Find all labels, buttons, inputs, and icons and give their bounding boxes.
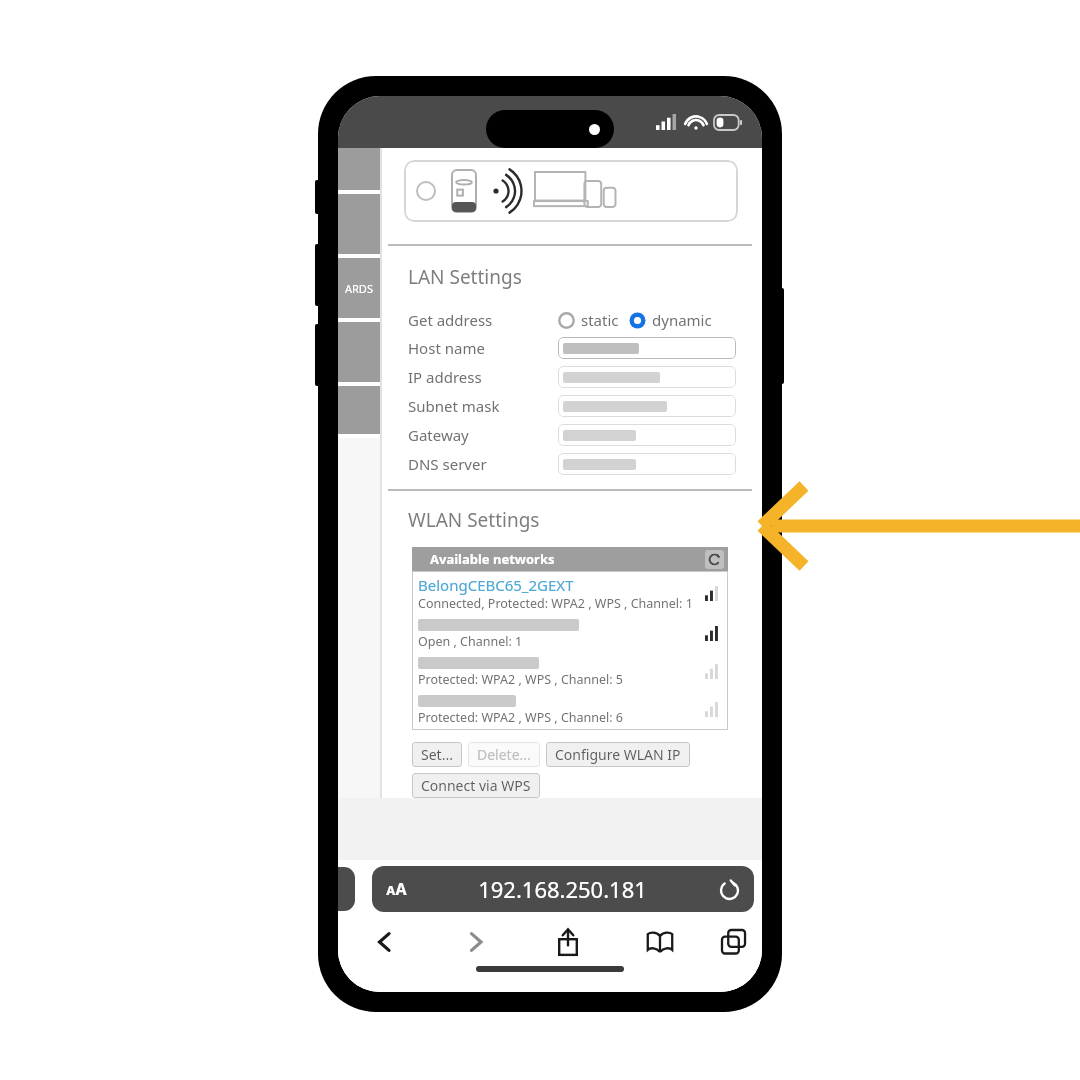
staticText: Subnet mask	[408, 396, 536, 416]
staticText: dynamic	[652, 310, 712, 330]
staticText: Open , Channel: 1	[418, 633, 523, 650]
button[interactable]: Connect via WPS	[412, 773, 540, 798]
staticText: Protected: WPA2 , WPS , Channel: 6	[418, 709, 624, 726]
staticText: Connect via WPS	[421, 776, 531, 795]
staticText: Configure WLAN IP	[555, 745, 681, 764]
button[interactable]: Configure WLAN IP	[546, 742, 690, 767]
staticText: LAN Settings	[408, 264, 522, 290]
button[interactable]: Open , Channel: 1	[414, 614, 726, 652]
button[interactable]: Protected: WPA2 , WPS , Channel: 6	[414, 690, 726, 728]
staticText: IP address	[408, 367, 536, 387]
staticText: Host name	[408, 338, 536, 358]
staticText: Protected: WPA2 , WPS , Channel: 5	[418, 671, 624, 688]
button[interactable]: Set...	[412, 742, 462, 767]
button[interactable]	[558, 366, 736, 388]
button[interactable]	[558, 453, 736, 475]
staticText: Delete...	[477, 745, 531, 764]
staticText: static	[581, 310, 619, 330]
staticText: BelongCEBC65_2GEXT	[418, 575, 574, 595]
other: Annotation arrow	[756, 486, 1080, 566]
button[interactable]: Refresh	[705, 550, 724, 569]
staticText: 192.168.250.181	[407, 874, 718, 904]
button[interactable]: Protected: WPA2 , WPS , Channel: 5	[414, 652, 726, 690]
staticText: Available networks	[430, 550, 555, 568]
staticText: ARDS	[345, 281, 373, 296]
staticText: WLAN Settings	[408, 507, 540, 533]
staticText: Gateway	[408, 425, 536, 445]
button[interactable]: Reload	[718, 878, 740, 900]
staticText: Connected, Protected: WPA2 , WPS , Chann…	[418, 595, 693, 612]
button[interactable]	[558, 424, 736, 446]
button[interactable]: Share	[522, 918, 614, 966]
button[interactable]: Forward	[430, 918, 522, 966]
button[interactable]: ARDS	[338, 258, 380, 318]
staticText: Set...	[421, 745, 453, 764]
button[interactable]: BelongCEBC65_2GEXT	[414, 573, 726, 614]
button[interactable]	[558, 337, 736, 359]
button[interactable]: Back	[338, 918, 430, 966]
staticText: DNS server	[408, 454, 536, 474]
staticText: ᴀA	[386, 878, 407, 900]
button[interactable]: Text size	[372, 866, 754, 912]
button[interactable]: dynamic	[629, 310, 712, 330]
staticText: Get address	[408, 310, 536, 330]
button[interactable]: Bookmarks	[614, 918, 706, 966]
button[interactable]	[558, 395, 736, 417]
button[interactable]: Delete...	[468, 742, 540, 767]
button[interactable]: static	[558, 310, 619, 330]
button[interactable]: Tabs	[706, 918, 762, 966]
